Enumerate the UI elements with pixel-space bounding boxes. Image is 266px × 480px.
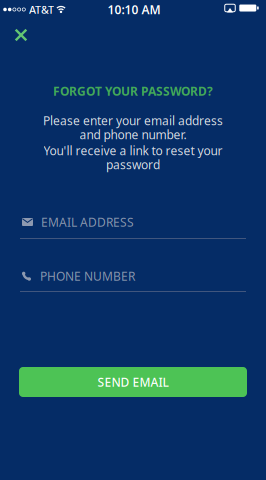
staticText: 10:10 AM	[107, 1, 160, 17]
button[interactable]: Close	[14, 28, 27, 41]
staticText: AT&T	[29, 2, 54, 17]
staticText: EMAIL ADDRESS	[41, 214, 134, 230]
staticText: and phone number.	[79, 126, 186, 142]
staticText: FORGOT YOUR PASSWORD?	[53, 83, 213, 99]
staticText: Please enter your email address	[43, 112, 223, 128]
staticText: PHONE NUMBER	[40, 268, 135, 284]
button[interactable]: Phone Number	[20, 268, 246, 292]
staticText: password	[106, 156, 160, 172]
button[interactable]: Email Address	[20, 214, 246, 239]
staticText: You'll receive a link to reset your	[43, 142, 222, 158]
staticText: SEND EMAIL	[97, 374, 168, 390]
button[interactable]: SEND EMAIL	[19, 367, 247, 397]
